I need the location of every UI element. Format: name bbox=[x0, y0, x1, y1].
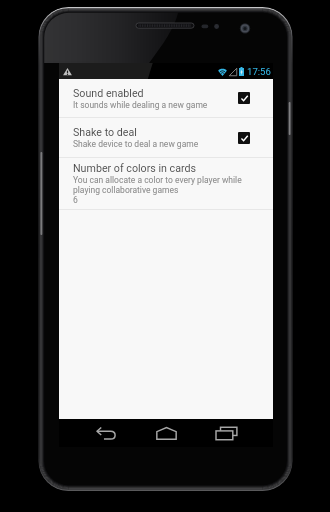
staticText: 6 bbox=[73, 195, 78, 205]
staticText: 17:56 bbox=[247, 66, 271, 77]
button[interactable]: Back bbox=[76, 419, 136, 447]
button[interactable]: Toggle Sound enabled bbox=[238, 92, 250, 104]
staticText: playing collaborative games bbox=[73, 185, 179, 195]
button[interactable]: Shake to deal bbox=[59, 118, 273, 157]
button[interactable]: Number of colors in cards bbox=[59, 158, 273, 209]
button[interactable]: Toggle Shake to deal bbox=[238, 132, 250, 144]
staticText: Number of colors in cards bbox=[73, 162, 197, 175]
staticText: You can allocate a color to every player… bbox=[73, 175, 242, 185]
button[interactable]: Home bbox=[136, 419, 196, 447]
staticText: Sound enabled bbox=[73, 87, 144, 100]
staticText: Shake device to deal a new game bbox=[73, 139, 199, 149]
button[interactable]: Recent apps bbox=[196, 419, 256, 447]
staticText: It sounds while dealing a new game bbox=[73, 100, 208, 110]
button[interactable]: Sound enabled bbox=[59, 79, 273, 117]
staticText: Shake to deal bbox=[73, 126, 137, 139]
